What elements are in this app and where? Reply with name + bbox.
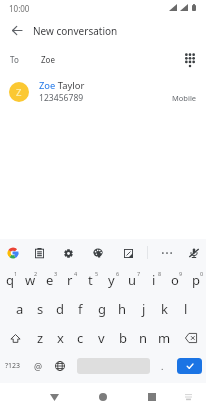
staticText: 6 xyxy=(116,270,120,277)
button[interactable]: Back xyxy=(5,19,28,41)
staticText: a xyxy=(16,300,24,318)
button[interactable]: Home xyxy=(90,384,116,410)
button[interactable]: Keyboard settings xyxy=(57,242,79,264)
staticText: l xyxy=(184,300,188,318)
staticText: g xyxy=(98,300,106,318)
button[interactable]: j xyxy=(133,295,154,323)
staticText: n xyxy=(139,329,148,347)
staticText: 0 xyxy=(200,270,204,277)
staticText: d xyxy=(56,300,64,318)
button[interactable]: d xyxy=(50,295,70,323)
staticText: z xyxy=(37,329,44,347)
button[interactable]: g xyxy=(91,295,112,323)
button[interactable]: l xyxy=(175,295,196,323)
button[interactable]: t xyxy=(80,266,101,294)
staticText: To xyxy=(10,54,19,65)
button[interactable]: i xyxy=(143,266,164,294)
staticText: y xyxy=(108,271,115,289)
staticText: 4 xyxy=(74,270,78,277)
staticText: q xyxy=(6,271,14,289)
staticText: . xyxy=(161,360,164,372)
button[interactable]: e xyxy=(40,266,60,294)
button[interactable]: w xyxy=(20,266,40,294)
staticText: t xyxy=(88,271,93,289)
button[interactable]: Clipboard xyxy=(28,242,50,264)
button[interactable]: y xyxy=(101,266,122,294)
staticText: Zoe xyxy=(41,54,55,65)
button[interactable]: . xyxy=(152,352,172,380)
button[interactable]: Dialpad xyxy=(178,48,201,71)
staticText: 7 xyxy=(137,270,141,277)
button[interactable]: z xyxy=(30,324,50,352)
button[interactable]: x xyxy=(50,324,70,352)
staticText: 3 xyxy=(54,270,58,277)
staticText: o xyxy=(171,271,179,289)
staticText: 2 xyxy=(34,270,38,277)
staticText: c xyxy=(77,329,84,347)
button[interactable]: Themes xyxy=(87,242,109,264)
staticText: Zoe Taylor xyxy=(39,79,85,92)
staticText: m xyxy=(158,329,171,347)
staticText: u xyxy=(128,271,137,289)
staticText: @ xyxy=(34,360,43,372)
staticText: 5 xyxy=(95,270,99,277)
staticText: ?123 xyxy=(5,361,21,371)
button[interactable]: Shift xyxy=(0,324,30,352)
button[interactable]: Recent apps xyxy=(139,384,165,410)
staticText: 123456789 xyxy=(39,92,84,104)
staticText: j xyxy=(142,300,146,318)
staticText: 1 xyxy=(14,270,18,277)
button[interactable]: Keyboard switcher xyxy=(175,384,201,410)
staticText: Mobile xyxy=(172,93,197,103)
button[interactable]: c xyxy=(70,324,91,352)
button[interactable]: Backspace xyxy=(175,324,206,352)
button[interactable]: k xyxy=(154,295,175,323)
staticText: 10:00 xyxy=(9,3,30,14)
button[interactable]: v xyxy=(91,324,112,352)
staticText: i xyxy=(152,271,156,289)
button[interactable]: @ xyxy=(27,352,50,380)
button[interactable]: h xyxy=(112,295,133,323)
staticText: 8 xyxy=(158,270,162,277)
button[interactable]: r xyxy=(60,266,80,294)
staticText: p xyxy=(192,271,200,289)
button[interactable]: ?123 xyxy=(1,352,24,380)
button[interactable]: s xyxy=(30,295,50,323)
button[interactable]: Send message xyxy=(177,358,202,374)
staticText: h xyxy=(118,300,127,318)
button[interactable]: a xyxy=(10,295,30,323)
button[interactable]: m xyxy=(154,324,175,352)
button[interactable]: p xyxy=(185,266,206,294)
staticText: x xyxy=(57,329,64,347)
button[interactable]: o xyxy=(164,266,185,294)
staticText: r xyxy=(67,271,73,289)
button[interactable]: q xyxy=(0,266,20,294)
staticText: Z xyxy=(16,86,22,99)
button[interactable]: Change language xyxy=(48,352,71,380)
staticText: v xyxy=(98,329,105,347)
staticText: f xyxy=(78,300,83,318)
staticText: w xyxy=(25,271,36,289)
button[interactable]: b xyxy=(112,324,133,352)
staticText: New conversation xyxy=(33,24,118,38)
button[interactable]: n xyxy=(133,324,154,352)
button[interactable]: f xyxy=(70,295,91,323)
button[interactable]: Z xyxy=(0,77,206,107)
staticText: s xyxy=(37,300,44,318)
staticText: b xyxy=(119,329,127,347)
button[interactable]: Google search xyxy=(2,242,24,264)
staticText: e xyxy=(46,271,54,289)
button[interactable]: Voice input disabled xyxy=(183,242,205,264)
button[interactable]: Back xyxy=(41,384,67,410)
staticText: k xyxy=(161,300,168,318)
staticText: 9 xyxy=(179,270,183,277)
button[interactable]: More options xyxy=(156,242,178,264)
button[interactable]: Stickers xyxy=(117,242,139,264)
button[interactable]: u xyxy=(122,266,143,294)
